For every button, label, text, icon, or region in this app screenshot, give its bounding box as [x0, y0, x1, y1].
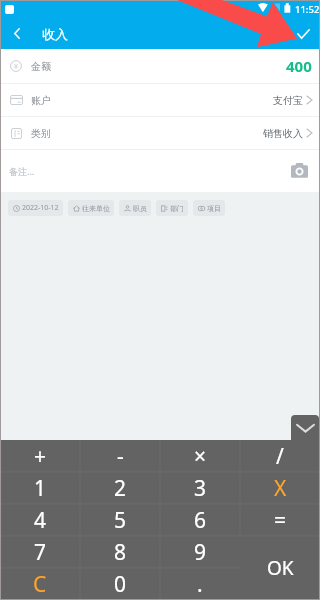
staticText: 7: [34, 538, 47, 567]
staticText: 6: [194, 506, 207, 535]
staticText: 11:52: [295, 3, 320, 16]
staticText: 2: [114, 474, 127, 503]
staticText: =: [274, 506, 287, 535]
button[interactable]: C: [0, 568, 80, 600]
staticText: 8: [114, 538, 127, 567]
staticText: 2022-10-12: [22, 203, 59, 213]
staticText: 4: [34, 506, 47, 535]
button[interactable]: 8: [80, 536, 160, 568]
button[interactable]: /: [240, 440, 320, 472]
button[interactable]: 账户: [0, 84, 320, 116]
staticText: 类别: [31, 127, 51, 140]
button[interactable]: 往来单位: [68, 200, 114, 216]
button[interactable]: 2022-10-12: [8, 200, 63, 216]
button[interactable]: 6: [160, 504, 240, 536]
staticText: 金额: [31, 60, 51, 73]
staticText: 项目: [207, 204, 221, 213]
button[interactable]: 5: [80, 504, 160, 536]
button[interactable]: 1: [0, 472, 80, 504]
staticText: 账户: [31, 94, 51, 107]
staticText: 部门: [170, 204, 184, 213]
button[interactable]: =: [240, 504, 320, 536]
staticText: 往来单位: [82, 204, 110, 213]
button[interactable]: X: [240, 472, 320, 504]
button[interactable]: Back: [0, 18, 34, 49]
button[interactable]: 部门: [156, 200, 188, 216]
staticText: +: [34, 442, 47, 471]
staticText: C: [33, 570, 47, 599]
button[interactable]: +: [0, 440, 80, 472]
button[interactable]: -: [80, 440, 160, 472]
button[interactable]: Hide keypad: [291, 415, 319, 440]
staticText: 支付宝: [273, 94, 303, 107]
button[interactable]: 类别: [0, 117, 320, 149]
staticText: 职员: [133, 204, 147, 213]
staticText: .: [197, 570, 203, 599]
button[interactable]: 项目: [193, 200, 225, 216]
button[interactable]: 2: [80, 472, 160, 504]
other: Attach photo: [291, 163, 308, 180]
button[interactable]: 3: [160, 472, 240, 504]
staticText: -: [117, 442, 124, 471]
button[interactable]: 4: [0, 504, 80, 536]
staticText: ×: [194, 442, 207, 471]
button[interactable]: Confirm: [286, 18, 320, 49]
button[interactable]: 备注...: [0, 150, 320, 192]
button[interactable]: 0: [80, 568, 160, 600]
staticText: 1: [34, 474, 47, 503]
button[interactable]: 职员: [119, 200, 151, 216]
button[interactable]: OK: [240, 536, 320, 600]
staticText: 收入: [42, 26, 68, 42]
button[interactable]: 金额: [0, 49, 320, 83]
staticText: 9: [194, 538, 207, 567]
button[interactable]: 9: [160, 536, 240, 568]
staticText: /: [276, 442, 284, 471]
staticText: X: [274, 474, 287, 503]
staticText: 销售收入: [263, 127, 303, 140]
staticText: 3: [194, 474, 207, 503]
staticText: 400: [286, 56, 312, 76]
staticText: 0: [114, 570, 127, 599]
staticText: 5: [114, 506, 127, 535]
staticText: OK: [267, 555, 294, 581]
button[interactable]: ×: [160, 440, 240, 472]
button[interactable]: .: [160, 568, 240, 600]
staticText: 备注...: [9, 165, 35, 177]
button[interactable]: 7: [0, 536, 80, 568]
